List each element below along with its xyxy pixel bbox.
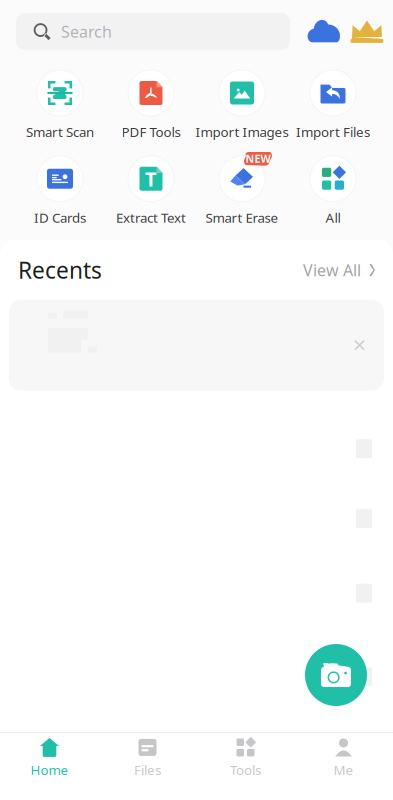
button[interactable]: Files — [98, 733, 196, 783]
staticText: Recents — [18, 255, 102, 285]
button[interactable]: ID Cards — [14, 156, 105, 226]
button[interactable]: NEW — [196, 156, 287, 226]
staticText: All — [325, 209, 340, 226]
staticText: Tools — [230, 761, 261, 779]
staticText: Import Images — [195, 123, 288, 141]
button[interactable]: Tools — [196, 733, 294, 783]
staticText: ID Cards — [34, 209, 86, 226]
staticText: Me — [333, 761, 353, 779]
button[interactable]: Smart Scan — [14, 70, 105, 141]
staticText: T — [145, 165, 157, 192]
button[interactable]: PDF Tools — [105, 70, 196, 141]
staticText: Import Files — [296, 123, 370, 141]
staticText: Smart Erase — [205, 209, 278, 226]
staticText: Smart Scan — [26, 123, 94, 141]
button[interactable]: Scan with camera — [305, 644, 367, 706]
staticText: Search — [61, 21, 112, 42]
button[interactable]: Search — [16, 13, 290, 50]
staticText: View All — [303, 259, 361, 281]
staticText: NEW — [245, 152, 270, 166]
staticText: Extract Text — [116, 209, 186, 226]
button[interactable]: View All — [303, 253, 376, 287]
button[interactable]: Premium — [346, 13, 388, 50]
button[interactable]: Home — [0, 733, 98, 783]
button[interactable]: Import Images — [196, 70, 287, 141]
button[interactable]: Import Files — [287, 70, 378, 141]
button[interactable]: T — [105, 156, 196, 226]
staticText: Home — [30, 761, 68, 779]
staticText: Files — [134, 761, 161, 779]
staticText: PDF Tools — [121, 123, 180, 141]
button[interactable]: Cloud backup — [302, 13, 346, 50]
button[interactable]: All — [287, 156, 378, 226]
button[interactable]: Me — [294, 733, 392, 783]
